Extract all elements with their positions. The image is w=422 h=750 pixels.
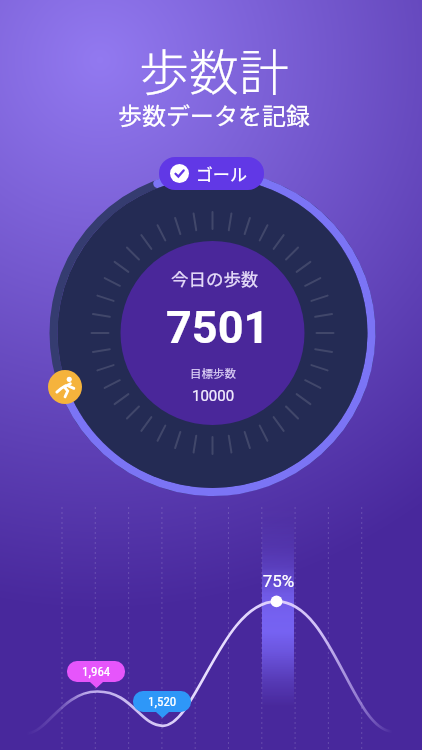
staticText: 10000 <box>192 387 235 405</box>
staticText: 目標歩数 <box>190 365 236 382</box>
staticText: 75% <box>256 571 301 591</box>
staticText: 1,964 <box>82 664 111 679</box>
staticText: 今日の歩数 <box>171 266 259 291</box>
staticText: 1,520 <box>148 694 177 709</box>
staticText: 歩数データを記録 <box>118 97 310 132</box>
button[interactable]: ゴール <box>159 157 264 190</box>
staticText: 7501 <box>166 301 270 354</box>
button[interactable]: 1,520 <box>133 691 191 712</box>
staticText: ゴール <box>196 161 247 186</box>
button[interactable]: 1,964 <box>67 661 125 682</box>
staticText: 歩数計 <box>139 33 289 105</box>
button[interactable]: Activity <box>48 370 82 404</box>
